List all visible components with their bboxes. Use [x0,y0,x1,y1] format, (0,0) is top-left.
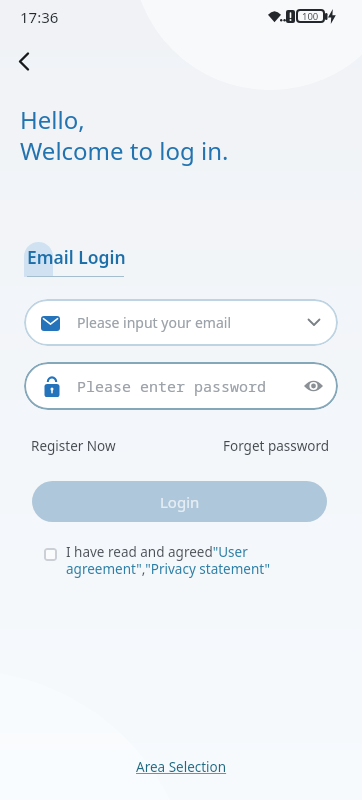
button[interactable]: Forget password [223,437,330,455]
staticText: 17:36 [20,7,59,27]
button[interactable]: Please input your email [24,299,338,346]
button[interactable]: Login [32,481,327,522]
staticText: Area Selection [136,758,227,776]
button[interactable]: Email Login [27,245,126,269]
staticText: Hello, [20,103,85,136]
staticText: Forget password [223,437,330,455]
button[interactable] [10,48,38,74]
staticText: Email Login [27,245,126,269]
staticText: Please input your email [77,313,232,332]
button[interactable]: I have read and agreed"User agreement","… [66,543,270,578]
staticText: 100 [302,10,319,23]
button[interactable]: Register Now [31,437,116,455]
staticText: Register Now [31,437,116,455]
button[interactable]: Area Selection [136,758,227,776]
button[interactable] [44,548,57,561]
staticText: Welcome to log in. [20,134,229,167]
staticText: Login [160,492,200,512]
button[interactable]: Please enter password [24,362,338,410]
staticText: Please enter password [77,376,267,396]
